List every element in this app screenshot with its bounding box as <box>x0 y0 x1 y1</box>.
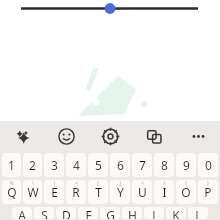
staticText: [ <box>97 180 99 187</box>
staticText: A <box>18 207 26 219</box>
staticText: 3 <box>51 157 58 173</box>
staticText: H <box>128 207 137 219</box>
staticText: | <box>53 180 56 187</box>
staticText: R <box>72 184 80 200</box>
button[interactable]: U <box>132 180 152 204</box>
button[interactable]: O <box>176 180 196 204</box>
button[interactable]: A <box>12 207 32 219</box>
button[interactable]: G <box>100 207 120 219</box>
staticText: W <box>27 184 39 200</box>
button[interactable]: 8 <box>154 153 174 177</box>
staticText: 6 <box>117 157 124 173</box>
staticText: P <box>204 184 212 200</box>
staticText: O <box>181 184 191 200</box>
button[interactable]: F <box>78 207 98 219</box>
staticText: % <box>9 180 14 187</box>
staticText: I <box>162 184 167 200</box>
staticText: = <box>75 180 78 187</box>
staticText: Y <box>117 184 124 200</box>
button[interactable]: 6 <box>110 153 130 177</box>
button[interactable]: 2 <box>23 153 42 177</box>
staticText: \ <box>32 180 34 187</box>
staticText: 9 <box>183 157 190 173</box>
staticText: 5 <box>95 157 102 173</box>
staticText: K <box>172 207 180 219</box>
button[interactable]: T <box>88 180 108 204</box>
button[interactable]: 1 <box>2 153 21 177</box>
button[interactable]: S <box>34 207 54 219</box>
staticText: 1 <box>8 157 15 173</box>
staticText: G <box>106 207 115 219</box>
button[interactable]: 0 <box>198 153 218 177</box>
button[interactable]: Q <box>2 180 21 204</box>
staticText: > <box>163 180 166 187</box>
button[interactable]: 3 <box>44 153 64 177</box>
staticText: Q <box>7 184 17 200</box>
button[interactable]: J <box>144 207 164 219</box>
staticText: F <box>85 207 92 219</box>
button[interactable]: K <box>166 207 186 219</box>
button[interactable]: Magic compose <box>0 121 44 152</box>
staticText: 8 <box>161 157 168 173</box>
button[interactable]: H <box>122 207 142 219</box>
button[interactable]: E <box>44 180 64 204</box>
staticText: ] <box>119 180 121 187</box>
button[interactable]: 4 <box>66 153 86 177</box>
staticText: E <box>51 184 58 200</box>
staticText: T <box>95 184 102 200</box>
staticText: < <box>141 180 144 187</box>
staticText: J <box>152 207 156 219</box>
button[interactable]: Settings <box>88 121 132 152</box>
staticText: U <box>138 184 147 200</box>
button[interactable]: L <box>188 207 208 219</box>
button[interactable]: 9 <box>176 153 196 177</box>
staticText: D <box>62 207 71 219</box>
staticText: L <box>195 207 202 219</box>
staticText: { <box>185 180 187 187</box>
staticText: 0 <box>205 157 212 173</box>
staticText: } <box>207 180 209 187</box>
button[interactable]: W <box>23 180 42 204</box>
staticText: 4 <box>73 157 80 173</box>
button[interactable]: 5 <box>88 153 108 177</box>
button[interactable]: I <box>154 180 174 204</box>
button[interactable]: Y <box>110 180 130 204</box>
button[interactable]: Stickers <box>132 121 176 152</box>
button[interactable]: More options <box>176 121 220 152</box>
button[interactable]: R <box>66 180 86 204</box>
staticText: S <box>41 207 48 219</box>
staticText: 7 <box>139 157 146 173</box>
button[interactable]: 7 <box>132 153 152 177</box>
button[interactable]: D <box>56 207 76 219</box>
staticText: 2 <box>29 157 36 173</box>
button[interactable]: Emoji <box>44 121 88 152</box>
button[interactable]: Slider <box>0 0 220 17</box>
button[interactable]: P <box>198 180 218 204</box>
